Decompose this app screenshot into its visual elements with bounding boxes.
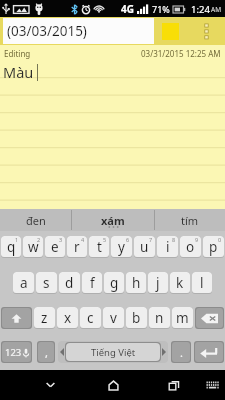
staticText: Màu bbox=[3, 62, 34, 82]
button[interactable]: (03/03/2015) bbox=[3, 18, 154, 44]
button[interactable]: Switch keyboard bbox=[201, 370, 225, 400]
staticText: r bbox=[74, 238, 80, 256]
button[interactable]: c bbox=[80, 307, 101, 328]
staticText: 1 bbox=[15, 236, 19, 243]
button[interactable]: Back bbox=[36, 370, 64, 400]
button[interactable]: u bbox=[134, 236, 155, 257]
button[interactable]: Symbols bbox=[2, 342, 31, 362]
button[interactable]: Enter bbox=[195, 342, 223, 362]
staticText: a bbox=[20, 274, 28, 292]
button[interactable]: Tiếng Việt bbox=[58, 341, 168, 363]
staticText: 3 bbox=[59, 236, 63, 243]
staticText: Editing bbox=[4, 48, 31, 59]
staticText: h bbox=[132, 274, 141, 292]
staticText: 71% bbox=[152, 3, 170, 15]
button[interactable]: d bbox=[59, 272, 80, 293]
staticText: . bbox=[180, 345, 183, 360]
staticText: w bbox=[28, 238, 39, 256]
staticText: 2 bbox=[37, 236, 41, 243]
button[interactable]: o bbox=[180, 236, 201, 257]
staticText: n bbox=[155, 309, 164, 327]
button[interactable]: i bbox=[157, 236, 178, 257]
button[interactable]: v bbox=[103, 307, 124, 328]
staticText: 4G bbox=[121, 2, 134, 16]
staticText: j bbox=[156, 274, 160, 292]
staticText: b bbox=[132, 309, 141, 327]
staticText: v bbox=[110, 309, 117, 327]
button[interactable]: p bbox=[203, 236, 224, 257]
button[interactable]: k bbox=[170, 272, 190, 293]
staticText: i bbox=[166, 238, 170, 256]
button[interactable]: a bbox=[13, 272, 34, 293]
staticText: q bbox=[7, 238, 16, 256]
button[interactable]: x bbox=[57, 307, 78, 328]
button[interactable]: h bbox=[126, 272, 146, 293]
button[interactable]: w bbox=[23, 236, 43, 257]
staticText: , bbox=[45, 345, 48, 360]
button[interactable]: l bbox=[192, 272, 212, 293]
staticText: m bbox=[176, 309, 189, 327]
staticText: 7 bbox=[149, 236, 153, 243]
button[interactable]: Comma bbox=[38, 342, 54, 362]
button[interactable]: Recents bbox=[160, 370, 188, 400]
button[interactable]: g bbox=[104, 272, 124, 293]
staticText: o bbox=[186, 238, 195, 256]
staticText: 03/31/2015 12:25 AM bbox=[141, 48, 221, 59]
button[interactable]: Home bbox=[99, 370, 127, 400]
button[interactable]: Period bbox=[172, 342, 190, 362]
button[interactable]: s bbox=[36, 272, 57, 293]
staticText: 8 bbox=[172, 236, 176, 243]
staticText: 1:24 bbox=[191, 3, 210, 16]
button[interactable]: f bbox=[82, 272, 102, 293]
button[interactable]: t bbox=[89, 236, 109, 257]
staticText: tím bbox=[181, 213, 199, 228]
staticText: 123 bbox=[5, 346, 22, 359]
staticText: t bbox=[97, 238, 102, 256]
staticText: s bbox=[43, 274, 50, 292]
button[interactable]: Backspace bbox=[196, 308, 223, 328]
staticText: 4 bbox=[81, 236, 85, 243]
staticText: x bbox=[64, 309, 72, 327]
button[interactable]: b bbox=[126, 307, 147, 328]
button[interactable]: n bbox=[149, 307, 170, 328]
staticText: y bbox=[118, 238, 125, 256]
staticText: g bbox=[110, 274, 119, 292]
button[interactable]: e bbox=[45, 236, 65, 257]
staticText: đen bbox=[26, 213, 46, 228]
button[interactable]: y bbox=[111, 236, 132, 257]
button[interactable]: Shift bbox=[2, 308, 31, 328]
staticText: Tiếng Việt bbox=[91, 346, 136, 359]
staticText: u bbox=[140, 238, 149, 256]
staticText: k bbox=[176, 274, 184, 292]
button[interactable]: q bbox=[1, 236, 21, 257]
staticText: c bbox=[87, 309, 94, 327]
staticText: 9 bbox=[195, 236, 199, 243]
staticText: e bbox=[51, 238, 59, 256]
button[interactable]: r bbox=[67, 236, 87, 257]
button[interactable]: j bbox=[148, 272, 168, 293]
staticText: AM bbox=[211, 5, 222, 14]
staticText: 0 bbox=[218, 236, 222, 243]
staticText: p bbox=[209, 238, 218, 256]
staticText: l bbox=[200, 274, 204, 292]
staticText: 5 bbox=[103, 236, 107, 243]
staticText: d bbox=[65, 274, 74, 292]
button[interactable]: z bbox=[34, 307, 55, 328]
button[interactable]: xám bbox=[72, 209, 154, 231]
button[interactable]: m bbox=[172, 307, 193, 328]
staticText: z bbox=[41, 309, 48, 327]
staticText: 6 bbox=[126, 236, 130, 243]
staticText: xám bbox=[101, 213, 125, 228]
button[interactable]: đen bbox=[0, 209, 71, 231]
staticText: f bbox=[90, 274, 95, 292]
button[interactable]: tím bbox=[155, 209, 225, 231]
staticText: (03/03/2015) bbox=[7, 22, 87, 40]
button[interactable]: More options bbox=[194, 17, 218, 45]
